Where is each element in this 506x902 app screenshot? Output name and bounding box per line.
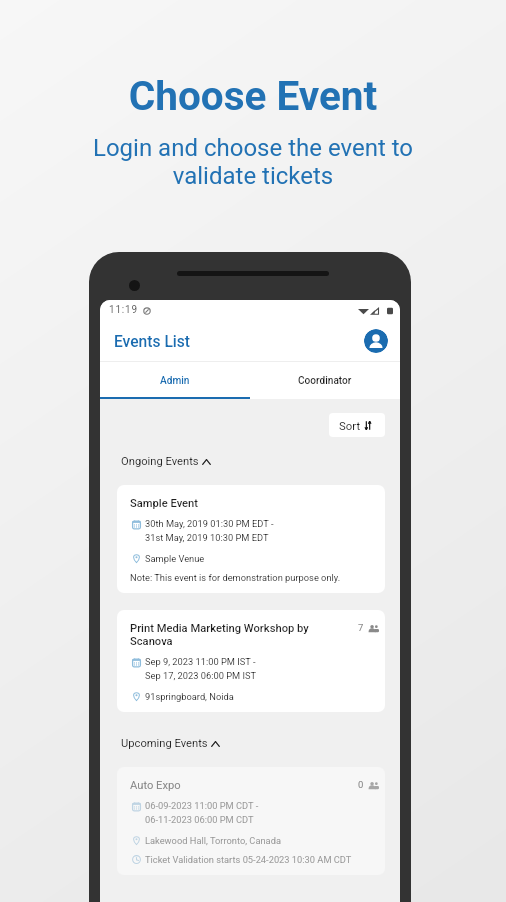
staticText: Lakewood Hall, Torronto, Canada — [145, 835, 281, 846]
staticText: 91springboard, Noida — [145, 691, 234, 702]
staticText: Print Media Marketing Workshop by Scanov… — [130, 622, 358, 648]
staticText: Login and choose the event to validate t… — [0, 134, 506, 190]
staticText: Coordinator — [298, 375, 352, 387]
staticText: Sep 9, 2023 11:00 PM IST - Sep 17, 2023 … — [145, 656, 257, 681]
staticText: Auto Expo — [130, 779, 358, 792]
staticText: 11:19 — [109, 304, 138, 316]
staticText: 0 — [358, 779, 364, 790]
staticText: 30th May, 2019 01:30 PM EDT - 31st May, … — [145, 518, 274, 543]
button[interactable]: Account — [364, 329, 388, 353]
staticText: Events List — [114, 333, 190, 351]
staticText: Sample Venue — [145, 553, 205, 564]
staticText: Upcoming Events — [121, 737, 208, 750]
staticText: Choose Event — [0, 72, 506, 119]
button[interactable]: Admin — [100, 364, 250, 397]
staticText: Ongoing Events — [121, 455, 199, 468]
button[interactable]: Upcoming Events — [121, 737, 400, 750]
staticText: 06-09-2023 11:00 PM CDT - 06-11-2023 06:… — [145, 800, 259, 825]
button[interactable]: Print Media Marketing Workshop by Scanov… — [117, 610, 385, 712]
staticText: 7 — [358, 622, 364, 633]
staticText: Ticket Validation starts 05-24-2023 10:3… — [145, 854, 352, 865]
staticText: Admin — [160, 375, 190, 387]
staticText: Sort — [339, 419, 361, 432]
button[interactable]: Sample Event — [117, 485, 385, 593]
button[interactable]: Auto Expo — [117, 767, 385, 875]
button[interactable]: Sort — [329, 413, 385, 437]
staticText: Sample Event — [130, 497, 379, 510]
button[interactable]: Ongoing Events — [121, 455, 400, 468]
staticText: Note: This event is for demonstration pu… — [130, 572, 341, 583]
button[interactable]: Coordinator — [250, 364, 400, 397]
